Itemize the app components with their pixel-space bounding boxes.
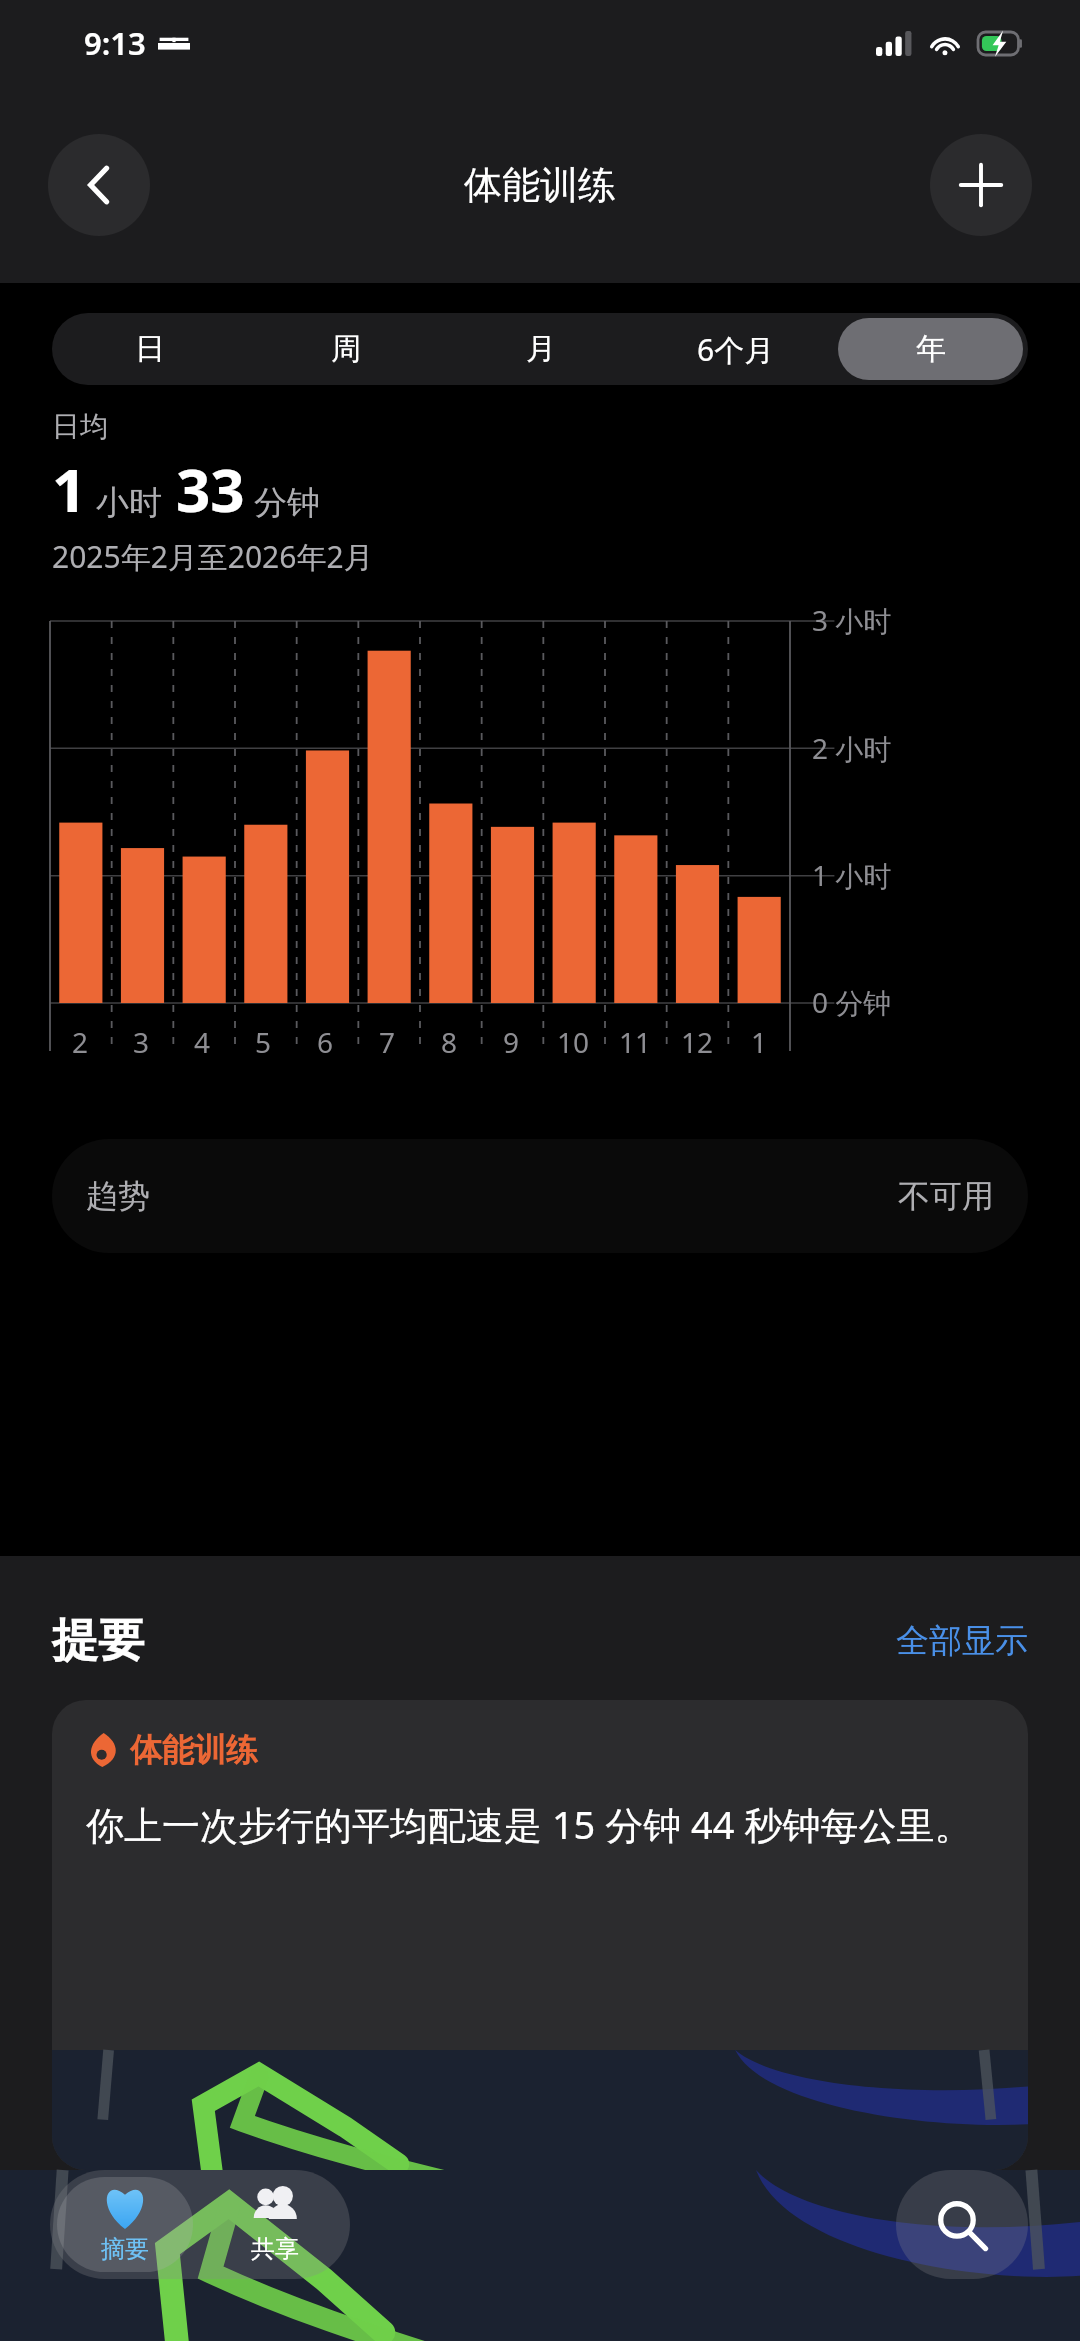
staticText: 不可用 <box>898 1176 994 1216</box>
button[interactable]: Add <box>930 134 1032 236</box>
staticText: 33 <box>176 448 245 530</box>
staticText: 6个月 <box>697 329 775 370</box>
staticText: 日 <box>135 330 165 368</box>
staticText: 11 <box>619 1023 652 1061</box>
button[interactable]: 月 <box>448 318 633 380</box>
staticText: 日均 <box>52 409 108 444</box>
staticText: 共享 <box>251 2234 299 2264</box>
staticText: 2 小时 <box>812 729 892 767</box>
button[interactable]: 日 <box>57 318 243 380</box>
staticText: 体能训练 <box>464 161 616 209</box>
staticText: 5 <box>255 1023 272 1061</box>
button[interactable]: 6个月 <box>643 318 828 380</box>
staticText: 6 <box>317 1023 334 1061</box>
button[interactable]: 摘要 <box>57 2177 193 2272</box>
staticText: 2025年2月至2026年2月 <box>52 536 374 577</box>
staticText: 3 <box>133 1023 150 1061</box>
staticText: 周 <box>331 330 361 368</box>
staticText: 月 <box>526 330 556 368</box>
button[interactable]: 年 <box>838 318 1023 380</box>
staticText: 9 <box>503 1023 520 1061</box>
button[interactable]: 趋势 <box>52 1139 1028 1253</box>
staticText: 1 <box>751 1023 768 1061</box>
staticText: 0 分钟 <box>812 983 892 1021</box>
staticText: 摘要 <box>101 2234 149 2264</box>
staticText: 1 小时 <box>812 856 892 894</box>
staticText: 7 <box>379 1023 396 1061</box>
staticText: 分钟 <box>254 482 320 524</box>
staticText: 提要 <box>52 1612 144 1670</box>
button[interactable]: Search <box>896 2170 1028 2279</box>
staticText: 1 <box>52 448 87 530</box>
staticText: 8 <box>441 1023 458 1061</box>
button[interactable]: 全部显示 <box>896 1620 1028 1662</box>
staticText: 12 <box>681 1023 714 1061</box>
button[interactable]: 周 <box>253 318 438 380</box>
staticText: 小时 <box>96 482 162 524</box>
staticText: 全部显示 <box>896 1620 1028 1662</box>
staticText: 4 <box>194 1023 211 1061</box>
staticText: 年 <box>916 330 946 368</box>
staticText: 9:13 <box>84 22 146 64</box>
staticText: 10 <box>557 1023 590 1061</box>
button[interactable]: 体能训练 <box>52 1700 1028 2170</box>
staticText: 3 小时 <box>812 601 892 639</box>
staticText: 趋势 <box>86 1176 150 1216</box>
staticText: 体能训练 <box>130 1730 258 1770</box>
staticText: 2 <box>72 1023 89 1061</box>
button[interactable]: 共享 <box>207 2177 343 2272</box>
staticText: 你上一次步行的平均配速是 15 分钟 44 秒钟每公里。 <box>86 1798 973 1850</box>
button[interactable]: Back <box>48 134 150 236</box>
